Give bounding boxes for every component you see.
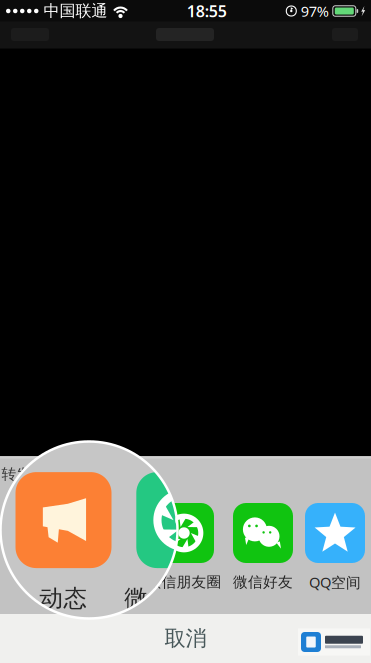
staticText: 微信朋友圈 (146, 573, 221, 591)
button[interactable]: 微信好友 (0, 0, 261, 330)
button[interactable]: 取消 (0, 614, 371, 663)
staticText: 微信好友 (233, 573, 293, 591)
button[interactable]: QQ空间 (0, 0, 371, 663)
button[interactable]: 动态 (0, 0, 261, 330)
staticText: 中国联通 (43, 1, 107, 21)
staticText: 97% (301, 1, 329, 21)
button[interactable]: 微信朋友圈 (0, 0, 261, 330)
staticText: QQ空间 (309, 572, 361, 592)
staticText: 转发到 (1, 465, 46, 483)
staticText: 18:55 (187, 0, 227, 22)
button[interactable]: 微信好友 (0, 0, 371, 663)
button[interactable]: QQ空间 (0, 0, 261, 330)
staticText: 取消 (164, 625, 206, 652)
button[interactable]: 微信朋友圈 (0, 0, 371, 663)
button[interactable]: 动态 (0, 0, 371, 663)
